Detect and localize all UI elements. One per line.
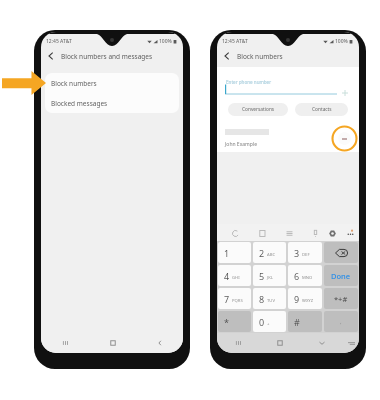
staticText: Block numbers and messages <box>61 52 153 61</box>
staticText: GHI <box>232 275 240 281</box>
staticText: 12:45 AT&T <box>46 38 72 45</box>
button[interactable]: Change keyboard <box>343 333 359 353</box>
button[interactable]: Recents <box>217 333 259 353</box>
button[interactable]: 8 <box>253 288 286 309</box>
staticText: 7 <box>224 293 230 305</box>
button[interactable]: sym <box>324 288 358 309</box>
button[interactable]: More options <box>343 226 357 240</box>
button[interactable]: Keyboard settings <box>325 226 339 240</box>
button[interactable]: 4 <box>218 265 251 286</box>
button[interactable]: del <box>324 242 358 263</box>
button[interactable]: Blocked messages <box>45 93 179 113</box>
staticText: 8 <box>259 293 265 305</box>
button[interactable]: done <box>324 265 358 286</box>
staticText: John Example <box>225 141 257 148</box>
staticText: MNO <box>302 275 313 281</box>
staticText: PQRS <box>232 298 243 304</box>
staticText: Block numbers <box>237 52 283 61</box>
button[interactable]: 5 <box>253 265 286 286</box>
button[interactable]: Contacts <box>295 103 348 116</box>
staticText: WXYZ <box>302 298 314 304</box>
button[interactable]: # <box>288 311 322 332</box>
staticText: TUV <box>267 298 275 304</box>
button[interactable]: Voice input <box>308 226 322 240</box>
staticText: 100% <box>159 38 172 45</box>
staticText: 4 <box>224 270 230 282</box>
staticText: 3 <box>294 247 300 259</box>
staticText: DEF <box>302 252 310 258</box>
button[interactable]: 3 <box>288 242 322 263</box>
staticText: 2 <box>259 247 265 259</box>
staticText: # <box>294 316 300 328</box>
button[interactable]: 1 <box>218 242 251 263</box>
staticText: *+# <box>334 294 348 304</box>
button[interactable]: Text <box>282 226 296 240</box>
button[interactable]: 0 <box>253 311 286 332</box>
button[interactable]: Block numbers <box>45 73 179 93</box>
staticText: Conversations <box>242 106 275 113</box>
staticText: Block numbers <box>51 79 97 88</box>
staticText: Contacts <box>312 106 332 113</box>
staticText: 0 <box>259 316 265 328</box>
staticText: , <box>340 318 342 326</box>
button[interactable]: Clipboard <box>255 226 269 240</box>
staticText: 1 <box>224 247 230 259</box>
button[interactable]: 7 <box>218 288 251 309</box>
staticText: Enter phone number <box>226 79 272 85</box>
staticText: 6 <box>294 270 300 282</box>
staticText: * <box>224 316 229 328</box>
staticText: + <box>267 321 270 327</box>
button[interactable]: Recents <box>41 333 89 353</box>
button[interactable]: Home <box>89 333 136 353</box>
staticText: JKL <box>267 275 273 281</box>
staticText: ABC <box>267 252 276 258</box>
button[interactable]: Navigate back <box>217 46 237 66</box>
button[interactable]: Undo <box>228 226 242 240</box>
button[interactable]: 9 <box>288 288 322 309</box>
button[interactable]: Add number <box>339 87 350 98</box>
button[interactable]: Navigate back <box>41 46 61 66</box>
staticText: Blocked messages <box>51 99 108 108</box>
staticText: 9 <box>294 293 300 305</box>
staticText: 12:45 AT&T <box>222 38 248 45</box>
staticText: Done <box>331 271 351 281</box>
button[interactable]: Conversations <box>228 103 288 116</box>
staticText: 5 <box>259 270 265 282</box>
button[interactable]: Remove blocked number <box>338 132 351 145</box>
button[interactable]: 6 <box>288 265 322 286</box>
button[interactable]: 2 <box>253 242 286 263</box>
button[interactable]: * <box>218 311 251 332</box>
button[interactable]: Back <box>136 333 183 353</box>
button[interactable]: Home <box>259 333 301 353</box>
button[interactable]: Hide keyboard <box>301 333 343 353</box>
staticText: 100% <box>335 38 348 45</box>
